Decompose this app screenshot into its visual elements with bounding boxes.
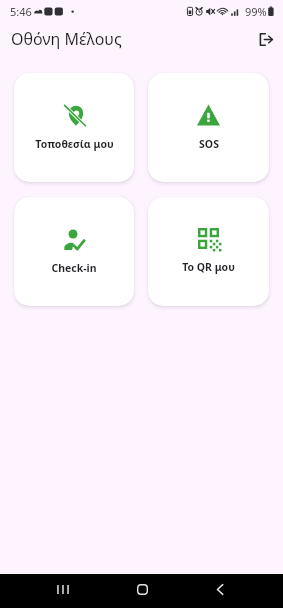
button[interactable]: Το QR μου [148,197,269,306]
staticText: Το QR μου [182,260,235,274]
button[interactable]: Home [134,581,150,597]
staticText: Check-in [51,261,97,275]
button[interactable]: Recent apps [55,581,71,597]
staticText: Οθόνη Μέλους [11,28,122,50]
button[interactable]: Logout [247,27,279,59]
button[interactable]: Check-in [14,197,134,306]
staticText: 99% [245,4,267,19]
staticText: Τοποθεσία μου [35,137,114,151]
button[interactable]: Τοποθεσία μου [14,73,134,182]
staticText: 5:46 [10,4,32,19]
button[interactable]: Back [212,581,228,597]
button[interactable]: SOS [148,73,269,182]
staticText: SOS [199,137,219,151]
